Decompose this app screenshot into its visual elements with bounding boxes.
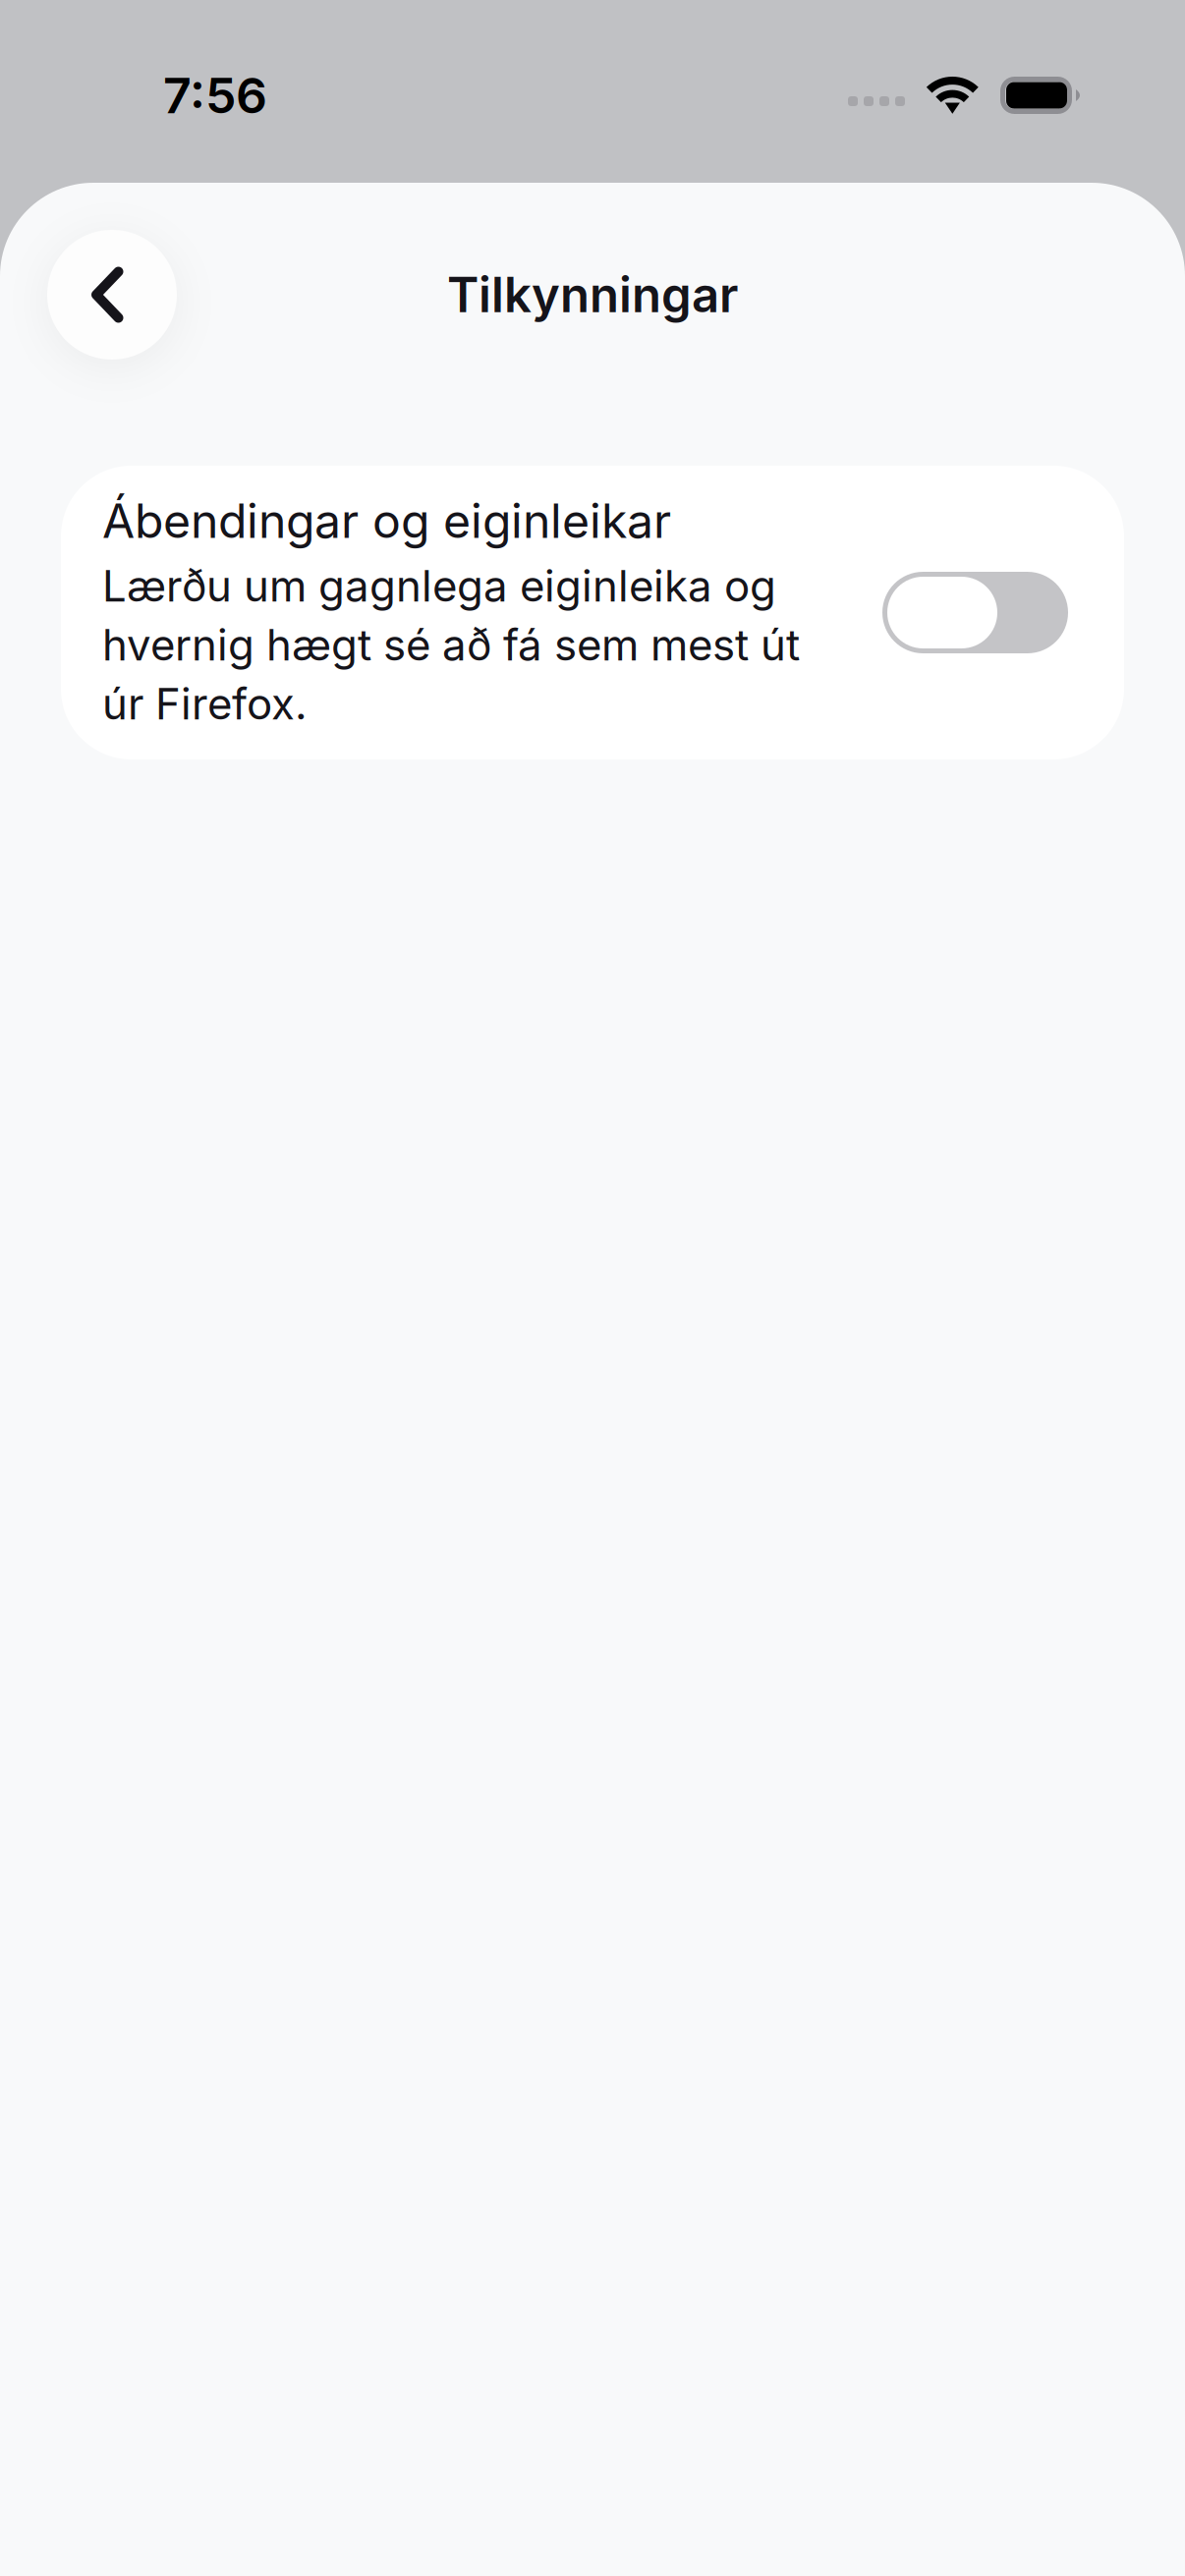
button[interactable]: Ábendingar og eiginleikar [61, 466, 1124, 759]
staticText: Tilkynningar [447, 266, 738, 324]
staticText: hvernig hægt sé að fá sem mest út [102, 619, 800, 671]
staticText: Lærðu um gagnlega eiginleika og [102, 560, 776, 612]
staticText: Ábendingar og eiginleikar [102, 492, 671, 549]
button[interactable]: Back [47, 230, 177, 360]
staticText: 7:56 [163, 66, 267, 125]
staticText: úr Firefox. [102, 678, 308, 730]
